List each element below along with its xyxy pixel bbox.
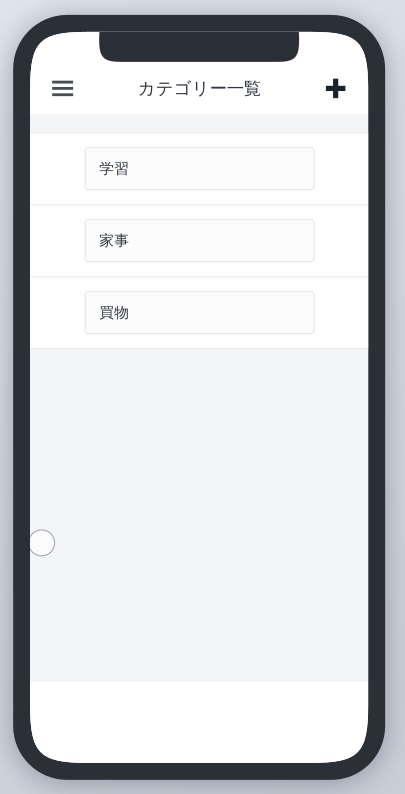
staticText: 家事 [99, 232, 129, 250]
button[interactable]: Menu [41, 66, 85, 110]
button[interactable]: 家事 [30, 205, 368, 276]
button[interactable]: 買物 [30, 277, 368, 348]
staticText: カテゴリー一覧 [138, 78, 261, 99]
staticText: 買物 [99, 304, 129, 322]
button[interactable]: 学習 [30, 133, 368, 204]
button[interactable]: Add [314, 66, 358, 110]
staticText: 学習 [99, 160, 129, 178]
